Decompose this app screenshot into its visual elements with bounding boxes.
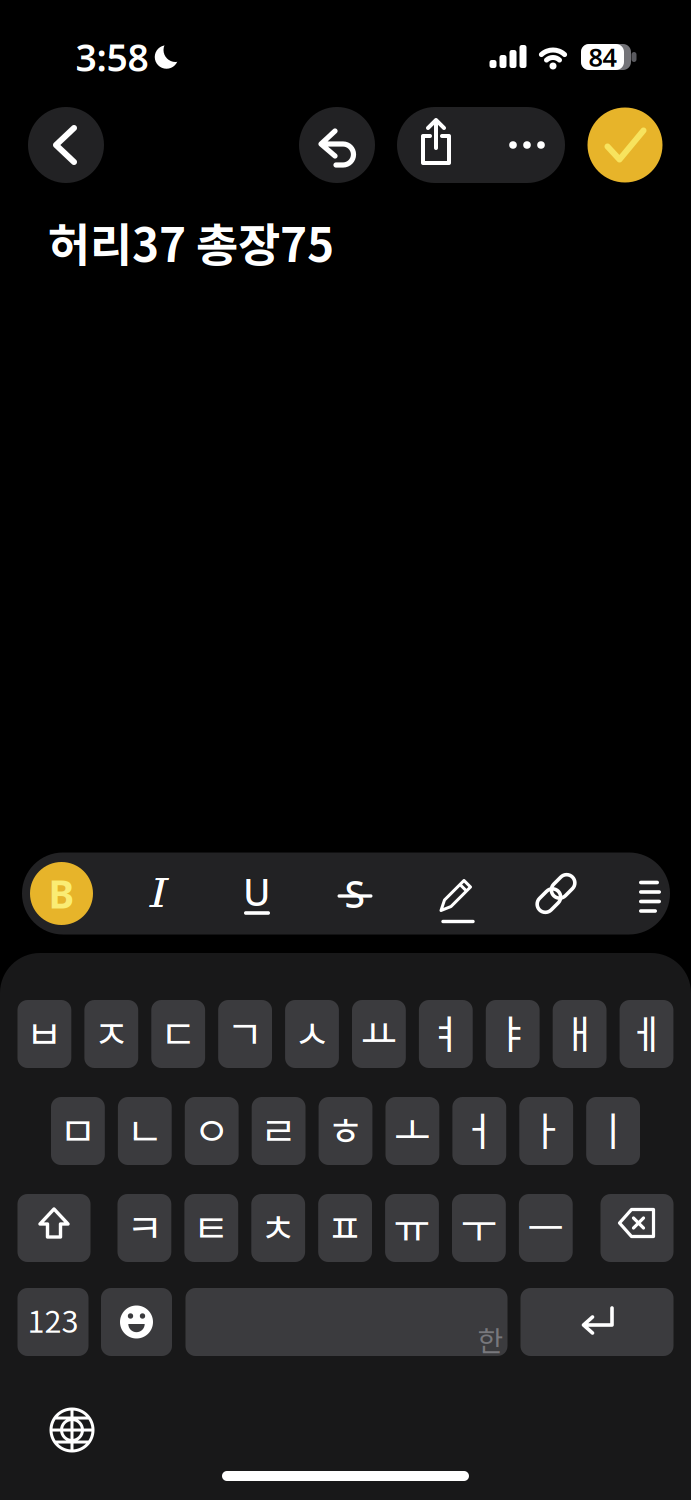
staticText: ㅋ: [126, 1196, 163, 1254]
button[interactable]: ㅜ: [452, 1194, 506, 1262]
staticText: ㅐ: [561, 1002, 598, 1060]
staticText: ㅏ: [528, 1099, 565, 1157]
button[interactable]: ㅌ: [184, 1194, 238, 1262]
button[interactable]: ㅑ: [486, 1000, 540, 1068]
staticText: ㄱ: [227, 1002, 264, 1060]
staticText: ㅕ: [427, 1002, 464, 1060]
button[interactable]: ㅗ: [385, 1097, 439, 1165]
button[interactable]: Next keyboard: [44, 1402, 100, 1458]
button[interactable]: ㅅ: [285, 1000, 339, 1068]
button[interactable]: ㅁ: [51, 1097, 105, 1165]
staticText: ㄴ: [126, 1099, 163, 1157]
button[interactable]: ㅣ: [586, 1097, 640, 1165]
button[interactable]: ㅛ: [352, 1000, 406, 1068]
button[interactable]: Done: [587, 107, 662, 182]
button[interactable]: Strikethrough: [320, 858, 390, 928]
staticText: ㄷ: [160, 1002, 197, 1060]
staticText: 허리37 총장75: [48, 209, 334, 275]
staticText: ㅣ: [595, 1099, 632, 1157]
button[interactable]: Back: [28, 107, 104, 183]
button[interactable]: ㅍ: [318, 1194, 372, 1262]
staticText: ㅔ: [628, 1002, 665, 1060]
button[interactable]: Emoji: [101, 1288, 172, 1356]
button[interactable]: Shift: [17, 1194, 90, 1262]
button[interactable]: Undo: [299, 107, 375, 183]
button[interactable]: Bold: [28, 860, 95, 927]
staticText: ㅗ: [394, 1099, 431, 1157]
button[interactable]: Italic: [124, 858, 194, 928]
staticText: ㅈ: [93, 1002, 130, 1060]
button[interactable]: Return: [520, 1288, 673, 1356]
staticText: 123: [27, 1297, 78, 1342]
button[interactable]: ㅡ: [519, 1194, 573, 1262]
button[interactable]: Numbers: [17, 1288, 88, 1356]
staticText: S: [344, 869, 365, 918]
button[interactable]: ㅕ: [419, 1000, 473, 1068]
button[interactable]: ㅂ: [17, 1000, 71, 1068]
staticText: 3:58: [75, 32, 148, 82]
staticText: I: [151, 871, 166, 916]
staticText: ㅜ: [460, 1196, 497, 1254]
staticText: ㄹ: [260, 1099, 297, 1157]
staticText: U: [243, 867, 271, 916]
staticText: ㅅ: [293, 1002, 330, 1060]
button[interactable]: ㅈ: [84, 1000, 138, 1068]
staticText: ㅂ: [26, 1002, 63, 1060]
staticText: ㅠ: [393, 1196, 430, 1254]
staticText: ㅡ: [527, 1196, 564, 1254]
button[interactable]: Text formatting: [615, 858, 685, 928]
staticText: 84: [588, 40, 616, 74]
button[interactable]: ㅠ: [385, 1194, 439, 1262]
button[interactable]: ㅔ: [620, 1000, 673, 1068]
button[interactable]: Highlight: [423, 858, 493, 928]
button[interactable]: Space: [185, 1288, 507, 1356]
staticText: ㅊ: [260, 1196, 297, 1254]
staticText: ㅁ: [59, 1099, 96, 1157]
staticText: B: [48, 868, 74, 919]
staticText: ㅎ: [327, 1099, 364, 1157]
button[interactable]: ㅏ: [519, 1097, 573, 1165]
staticText: ㅓ: [461, 1099, 498, 1157]
staticText: 한: [477, 1319, 503, 1359]
button[interactable]: ㄷ: [151, 1000, 205, 1068]
button[interactable]: Delete: [600, 1194, 673, 1262]
staticText: ㅌ: [193, 1196, 230, 1254]
button[interactable]: ㅋ: [117, 1194, 171, 1262]
staticText: ㅛ: [360, 1002, 397, 1060]
button[interactable]: Link: [521, 858, 591, 928]
button[interactable]: ㅓ: [452, 1097, 506, 1165]
button[interactable]: Underline: [222, 858, 292, 928]
button[interactable]: ㅊ: [251, 1194, 305, 1262]
button[interactable]: ㅎ: [319, 1097, 372, 1165]
staticText: ㅍ: [327, 1196, 364, 1254]
button[interactable]: More: [489, 107, 565, 183]
button[interactable]: ㄴ: [118, 1097, 172, 1165]
button[interactable]: ㄱ: [218, 1000, 272, 1068]
button[interactable]: ㅇ: [185, 1097, 239, 1165]
staticText: ㅇ: [193, 1099, 230, 1157]
staticText: ㅑ: [494, 1002, 531, 1060]
button[interactable]: Share: [399, 107, 475, 183]
button[interactable]: ㅐ: [553, 1000, 606, 1068]
button[interactable]: ㄹ: [252, 1097, 305, 1165]
